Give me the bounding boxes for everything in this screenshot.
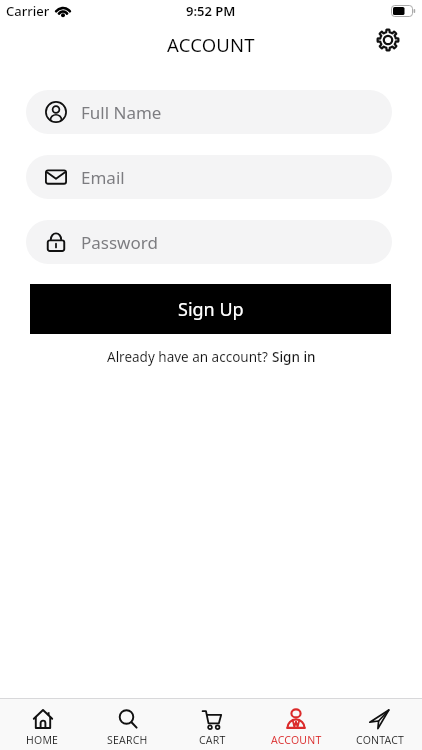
staticText: Password bbox=[81, 231, 158, 254]
button[interactable]: Sign Up bbox=[30, 284, 391, 334]
button[interactable]: CONTACT bbox=[338, 699, 422, 750]
staticText: Email bbox=[81, 166, 125, 189]
staticText: Carrier bbox=[6, 2, 50, 20]
staticText: ACCOUNT bbox=[167, 32, 255, 57]
staticText: ACCOUNT bbox=[271, 733, 322, 747]
staticText: CONTACT bbox=[356, 733, 405, 747]
button[interactable]: SEARCH bbox=[85, 699, 170, 750]
button[interactable]: ACCOUNT bbox=[254, 699, 338, 750]
button[interactable]: CART bbox=[170, 699, 254, 750]
staticText: CART bbox=[199, 733, 226, 747]
staticText: Sign Up bbox=[178, 297, 244, 322]
staticText: 9:52 PM bbox=[186, 2, 236, 20]
staticText: SEARCH bbox=[107, 733, 148, 747]
staticText: HOME bbox=[26, 733, 59, 747]
staticText: Full Name bbox=[81, 101, 162, 124]
button[interactable]: Email bbox=[26, 155, 392, 199]
button[interactable] bbox=[375, 31, 401, 57]
staticText: Sign in bbox=[272, 348, 316, 366]
button[interactable]: HOME bbox=[0, 699, 85, 750]
button[interactable]: Password bbox=[26, 220, 392, 264]
button[interactable]: Full Name bbox=[26, 90, 392, 134]
staticText: Already have an account? bbox=[107, 348, 272, 366]
button[interactable]: Already have an account? bbox=[107, 348, 316, 366]
